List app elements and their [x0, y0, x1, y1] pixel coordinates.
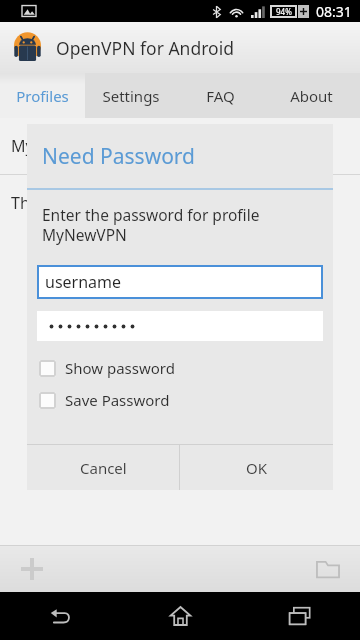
button[interactable]: FAQ: [177, 73, 263, 118]
staticText: Show password: [65, 358, 175, 378]
button[interactable]: Profiles: [0, 73, 85, 118]
button[interactable]: [37, 311, 323, 341]
button[interactable]: username: [37, 265, 323, 299]
staticText: FAQ: [206, 86, 235, 106]
button[interactable]: Home: [120, 592, 240, 640]
staticText: About: [290, 86, 333, 106]
staticText: Cancel: [80, 458, 127, 478]
staticText: MyNewVPN: [11, 135, 99, 157]
staticText: The second profile: [11, 192, 150, 214]
button[interactable]: OK: [180, 445, 333, 490]
staticText: Enter the password for profile MyNewVPN: [42, 204, 311, 246]
staticText: Settings: [102, 86, 160, 106]
button[interactable]: About: [263, 73, 360, 118]
button[interactable]: Settings: [85, 73, 177, 118]
button[interactable]: Recent apps: [240, 592, 360, 640]
staticText: Need Password: [42, 142, 196, 171]
staticText: Save Password: [65, 390, 170, 410]
staticText: OK: [246, 458, 268, 478]
button[interactable]: Save Password: [27, 387, 333, 413]
button[interactable]: Import profile from file: [308, 549, 348, 589]
staticText: Profiles: [16, 86, 69, 106]
staticText: 08:31: [316, 2, 352, 21]
button[interactable]: Back: [0, 592, 120, 640]
button[interactable]: MyNewVPN: [0, 118, 360, 174]
staticText: username: [45, 271, 122, 293]
button[interactable]: Cancel: [27, 445, 179, 490]
staticText: OpenVPN for Android: [56, 36, 234, 60]
button[interactable]: Add profile: [12, 549, 52, 589]
staticText: 94%: [276, 6, 292, 17]
button[interactable]: The second profile: [0, 175, 360, 231]
button[interactable]: Show password: [27, 355, 333, 381]
